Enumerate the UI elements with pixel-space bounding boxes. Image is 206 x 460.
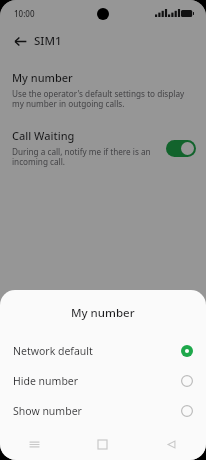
- button[interactable]: Call Waiting: [0, 126, 206, 170]
- staticText: Show number: [13, 404, 181, 418]
- staticText: My number: [71, 305, 135, 321]
- staticText: Hide number: [13, 374, 181, 388]
- button[interactable]: Network default: [0, 336, 206, 366]
- staticText: Use the operator's default settings to d…: [12, 88, 196, 110]
- button[interactable]: Hide number: [0, 366, 206, 396]
- button[interactable]: My number: [0, 68, 206, 112]
- staticText: Call Waiting: [12, 128, 75, 143]
- staticText: 10:00: [14, 8, 35, 19]
- button[interactable]: Call waiting toggle: [166, 140, 196, 157]
- button[interactable]: Back: [137, 429, 206, 460]
- button[interactable]: Show number: [0, 396, 206, 426]
- staticText: SIM1: [34, 33, 62, 49]
- staticText: My number: [12, 70, 73, 85]
- staticText: During a call, notify me if there is an …: [12, 146, 160, 168]
- staticText: Network default: [13, 344, 181, 358]
- button[interactable]: Back: [10, 31, 30, 51]
- button[interactable]: Home: [68, 429, 137, 460]
- button[interactable]: Recents: [0, 429, 68, 460]
